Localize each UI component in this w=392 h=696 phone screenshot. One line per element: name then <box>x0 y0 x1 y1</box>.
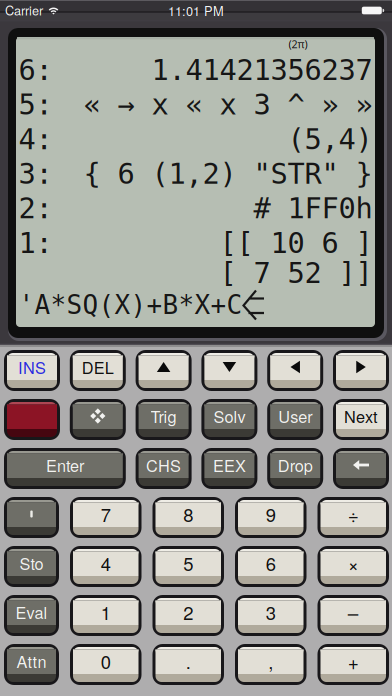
staticText: Enter <box>46 453 84 477</box>
staticText: × <box>348 549 359 577</box>
staticText: 'A*SQ(X)+B*X+C <box>18 290 242 320</box>
button[interactable]: Sto <box>4 546 59 587</box>
button[interactable]: ÷ <box>317 497 389 538</box>
button[interactable]: . <box>152 644 224 685</box>
staticText: 11:01 PM <box>168 1 224 20</box>
button[interactable]: Right <box>333 350 389 391</box>
staticText: (5,4) <box>287 122 372 156</box>
button[interactable]: Trig <box>136 399 192 440</box>
button[interactable]: Enter <box>4 448 126 489</box>
staticText: 5 <box>183 550 193 576</box>
staticText: 5: <box>18 88 52 121</box>
staticText: 3: <box>18 157 52 190</box>
staticText: 6: <box>18 53 52 87</box>
staticText: 1 <box>101 599 111 625</box>
staticText: + <box>348 647 359 675</box>
staticText: 9 <box>266 501 276 527</box>
button[interactable]: , <box>235 644 306 685</box>
staticText: [ 7 52 ]] <box>219 256 372 290</box>
staticText: { 6 (1,2) "STR" } <box>83 157 372 190</box>
button[interactable]: Left <box>267 350 323 391</box>
staticText: (2π) <box>288 37 307 51</box>
staticText: 4: <box>18 122 52 156</box>
staticText: # 1FF0h <box>253 192 372 225</box>
staticText: 3 <box>266 599 276 625</box>
staticText: 8 <box>183 501 193 527</box>
staticText: Solv <box>213 404 245 428</box>
staticText: « → x « x 3 ^ » » <box>83 88 372 121</box>
button[interactable]: 7 <box>70 497 141 538</box>
button[interactable]: – <box>317 595 389 636</box>
button[interactable]: 0 <box>70 644 141 685</box>
button[interactable]: Down <box>201 350 257 391</box>
button[interactable]: 8 <box>152 497 224 538</box>
button[interactable]: × <box>317 546 389 587</box>
staticText: CHS <box>146 453 181 477</box>
staticText: INS <box>18 355 46 379</box>
button[interactable]: Up <box>136 350 192 391</box>
staticText: Trig <box>151 404 177 428</box>
button[interactable]: 3 <box>235 595 306 636</box>
staticText: ÷ <box>348 500 359 528</box>
staticText: EEX <box>213 453 246 477</box>
staticText: 2 <box>183 599 193 625</box>
button[interactable]: 1 <box>70 595 141 636</box>
staticText: , <box>268 648 273 674</box>
staticText: . <box>186 648 191 674</box>
staticText: 1.41421356237 <box>151 53 372 87</box>
button[interactable]: Next <box>333 399 389 440</box>
staticText: 1: <box>18 226 52 260</box>
staticText: Eval <box>15 600 47 624</box>
button[interactable]: INS <box>4 350 60 391</box>
button[interactable]: Attn <box>4 644 59 685</box>
staticText: 6 <box>266 550 276 576</box>
button[interactable]: Backspace <box>333 448 389 489</box>
staticText: Sto <box>19 551 43 575</box>
staticText: 2: <box>18 192 52 225</box>
button[interactable]: 5 <box>152 546 224 587</box>
staticText: User <box>278 404 312 428</box>
button[interactable]: CHS <box>136 448 192 489</box>
button[interactable]: Tick <box>4 497 59 538</box>
button[interactable]: EEX <box>201 448 257 489</box>
staticText: Carrier <box>5 1 43 19</box>
staticText: 4 <box>101 550 111 576</box>
button[interactable]: 6 <box>235 546 306 587</box>
button[interactable]: Drop <box>267 448 323 489</box>
button[interactable]: User <box>267 399 323 440</box>
staticText: DEL <box>82 355 114 379</box>
button[interactable]: Solv <box>201 399 257 440</box>
button[interactable]: 2 <box>152 595 224 636</box>
button[interactable]: Eval <box>4 595 59 636</box>
staticText: Attn <box>16 649 46 673</box>
staticText: 0 <box>101 648 111 674</box>
button[interactable]: 9 <box>235 497 306 538</box>
button[interactable]: 4 <box>70 546 141 587</box>
button[interactable]: Shift <box>4 399 60 440</box>
staticText: Drop <box>278 453 313 477</box>
button[interactable]: DEL <box>70 350 126 391</box>
staticText: [[ 10 6 ] <box>219 226 372 260</box>
staticText: 7 <box>101 501 111 527</box>
staticText: – <box>348 598 359 626</box>
button[interactable]: Menu <box>70 399 126 440</box>
staticText: Next <box>344 404 378 428</box>
button[interactable]: + <box>317 644 389 685</box>
